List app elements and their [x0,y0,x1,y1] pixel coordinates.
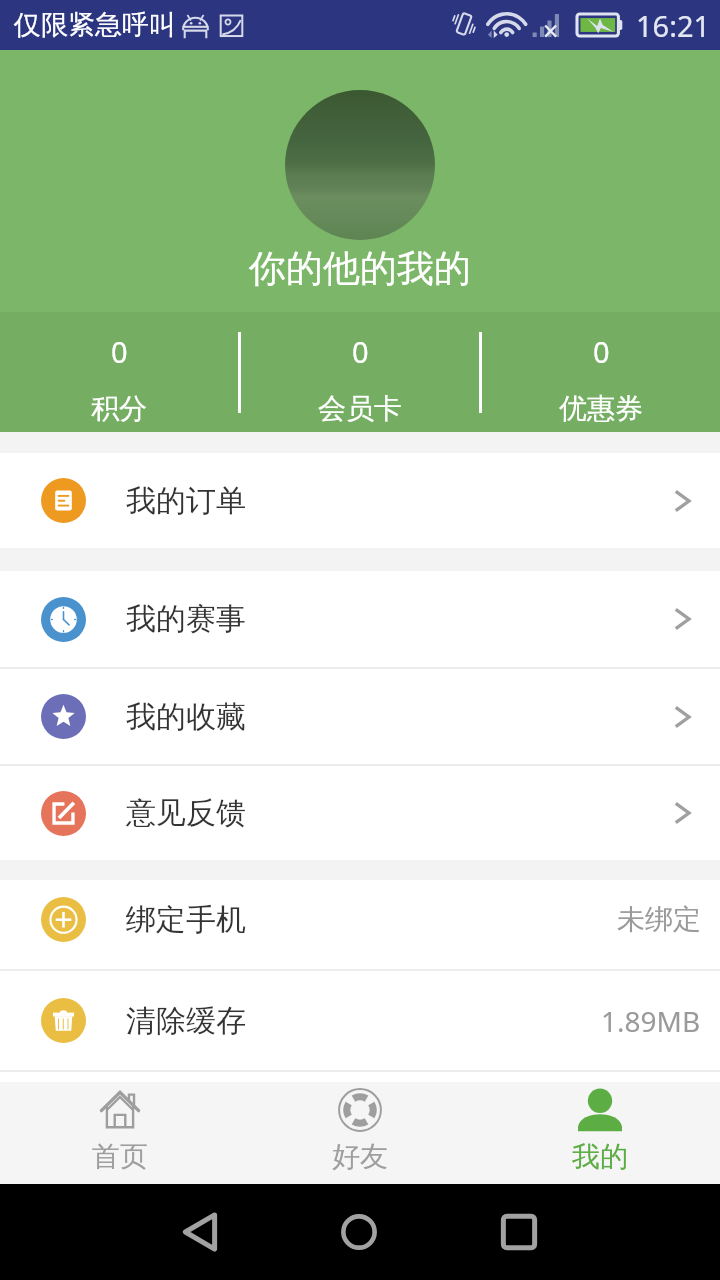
button[interactable]: 绑定手机 [0,880,720,969]
staticText: 清除缓存 [126,1002,246,1040]
button[interactable]: Recents [439,1184,599,1280]
button[interactable]: 我的订单 [0,453,720,548]
button[interactable]: Avatar [285,90,435,240]
staticText: 你的他的我的 [249,245,471,292]
button[interactable]: 0 [241,312,479,432]
staticText: 0 [352,332,369,371]
staticText: 会员卡 [318,391,402,426]
staticText: 积分 [91,391,147,426]
staticText: 我的收藏 [126,698,246,736]
staticText: 意见反馈 [126,794,246,832]
button[interactable]: 首页 [0,1082,240,1184]
button[interactable]: 意见反馈 [0,766,720,860]
button[interactable]: Back [120,1184,279,1280]
button[interactable]: 0 [482,312,720,432]
staticText: 我的订单 [126,482,246,520]
staticText: 绑定手机 [126,901,246,939]
staticText: 1.89MB [601,1002,701,1040]
button[interactable]: 我的赛事 [0,571,720,667]
button[interactable]: 0 [0,312,238,432]
staticText: 未绑定 [617,902,701,937]
staticText: 仅限紧急呼叫 [14,8,176,42]
button[interactable]: Home [279,1184,439,1280]
staticText: 0 [593,332,610,371]
button[interactable]: 我的 [480,1082,720,1184]
button[interactable]: 我的收藏 [0,669,720,764]
staticText: 好友 [332,1139,388,1174]
staticText: 我的赛事 [126,600,246,638]
staticText: 0 [111,332,128,371]
button[interactable]: 好友 [240,1082,480,1184]
staticText: 首页 [92,1139,148,1174]
staticText: 我的 [572,1139,628,1174]
button[interactable]: 清除缓存 [0,971,720,1070]
staticText: 16:21 [636,6,711,45]
staticText: 优惠券 [559,391,643,426]
